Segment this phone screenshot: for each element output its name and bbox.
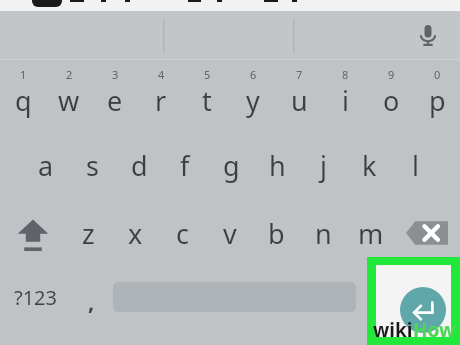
staticText: y: [246, 82, 260, 119]
button[interactable]: ?123: [0, 266, 70, 328]
button[interactable]: 5: [184, 60, 230, 130]
staticText: c: [176, 215, 189, 252]
staticText: ?123: [14, 284, 57, 311]
button[interactable]: Shift: [0, 200, 65, 266]
button[interactable]: 9: [368, 60, 414, 130]
button[interactable]: j: [300, 130, 346, 200]
staticText: 1: [20, 67, 27, 82]
button[interactable]: 3: [92, 60, 138, 130]
staticText: 0: [434, 67, 441, 82]
staticText: wiki: [373, 317, 413, 343]
staticText: w: [58, 82, 80, 119]
button[interactable]: n: [300, 200, 347, 266]
staticText: i: [342, 82, 349, 119]
staticText: ,: [88, 286, 95, 316]
staticText: a: [38, 147, 54, 184]
staticText: 3: [112, 67, 119, 82]
button[interactable]: 2: [46, 60, 92, 130]
staticText: 8: [342, 67, 349, 82]
button[interactable]: h: [254, 130, 300, 200]
staticText: m: [358, 215, 384, 252]
staticText: n: [315, 215, 332, 252]
staticText: f: [180, 147, 190, 184]
staticText: 5: [204, 67, 211, 82]
button[interactable]: g: [208, 130, 254, 200]
staticText: 7: [296, 67, 303, 82]
button[interactable]: z: [65, 200, 112, 266]
staticText: j: [320, 147, 327, 184]
button[interactable]: a: [22, 130, 69, 200]
staticText: u: [291, 82, 308, 119]
button[interactable]: Backspace: [394, 200, 460, 266]
button[interactable]: 8: [322, 60, 368, 130]
button[interactable]: k: [346, 130, 392, 200]
staticText: b: [268, 215, 285, 252]
button[interactable]: 1: [0, 60, 46, 130]
button[interactable]: m: [347, 200, 394, 266]
button[interactable]: 7: [276, 60, 322, 130]
button[interactable]: ,: [70, 266, 113, 328]
staticText: s: [86, 147, 99, 184]
button[interactable]: 6: [230, 60, 276, 130]
button[interactable]: 4: [138, 60, 184, 130]
button[interactable]: s: [69, 130, 116, 200]
staticText: p: [429, 82, 446, 119]
button[interactable]: Voice input: [408, 15, 448, 55]
staticText: q: [15, 82, 32, 119]
staticText: r: [155, 82, 167, 119]
staticText: x: [128, 215, 143, 252]
staticText: o: [383, 82, 400, 119]
staticText: g: [223, 147, 240, 184]
staticText: 9: [388, 67, 395, 82]
button[interactable]: c: [159, 200, 206, 266]
staticText: v: [223, 215, 237, 252]
button[interactable]: [356, 266, 460, 328]
staticText: 2: [66, 67, 73, 82]
staticText: t: [202, 82, 212, 119]
button[interactable]: 0: [414, 60, 460, 130]
staticText: k: [362, 147, 377, 184]
staticText: d: [131, 147, 148, 184]
staticText: h: [269, 147, 286, 184]
button[interactable]: d: [116, 130, 162, 200]
staticText: z: [82, 215, 95, 252]
button[interactable]: v: [206, 200, 253, 266]
button[interactable]: l: [392, 130, 438, 200]
staticText: 6: [250, 67, 257, 82]
button[interactable]: x: [112, 200, 159, 266]
button[interactable]: Enter: [400, 287, 446, 333]
button[interactable]: f: [162, 130, 208, 200]
staticText: How: [413, 317, 456, 343]
button[interactable]: b: [253, 200, 300, 266]
staticText: l: [412, 147, 419, 184]
staticText: e: [107, 82, 123, 119]
staticText: 4: [158, 67, 165, 82]
